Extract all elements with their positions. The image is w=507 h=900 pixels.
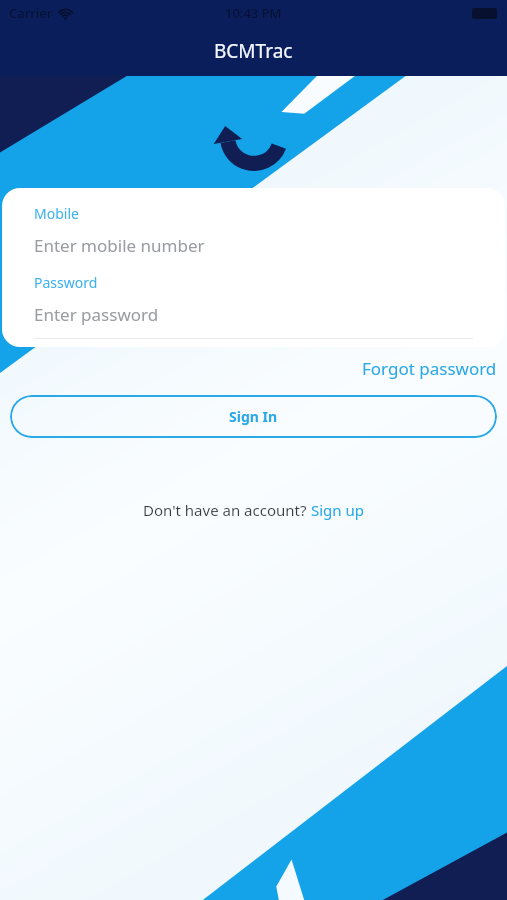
staticText: Enter password: [34, 303, 159, 326]
button[interactable]: Mobile: [2, 204, 505, 257]
staticText: Password: [34, 273, 98, 292]
staticText: Forgot password: [362, 357, 497, 380]
staticText: BCMTrac: [214, 38, 293, 64]
button[interactable]: Sign up: [311, 500, 364, 520]
other: App logo: [217, 100, 291, 174]
staticText: Sign In: [229, 407, 278, 426]
staticText: Enter mobile number: [34, 234, 205, 257]
button[interactable]: Sign In: [10, 395, 497, 438]
staticText: Carrier: [9, 4, 53, 22]
button[interactable]: Forgot password: [352, 347, 507, 390]
button[interactable]: Password: [2, 273, 505, 326]
staticText: Sign up: [311, 500, 364, 520]
staticText: Don't have an account?: [143, 500, 311, 520]
staticText: Mobile: [34, 204, 79, 223]
staticText: 10:43 PM: [225, 4, 282, 22]
